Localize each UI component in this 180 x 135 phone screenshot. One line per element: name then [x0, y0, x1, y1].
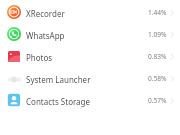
button[interactable]: WhatsApp: [0, 23, 180, 45]
staticText: 1.44%: [148, 8, 167, 17]
other: WhatsApp: [7, 27, 21, 41]
staticText: Contacts Storage: [26, 96, 91, 107]
button[interactable]: Contacts Storage: [0, 89, 180, 111]
staticText: System Launcher: [26, 74, 91, 85]
other: System Launcher: [7, 71, 21, 85]
staticText: WhatsApp: [26, 30, 65, 41]
other: Contacts Storage: [7, 93, 21, 107]
button[interactable]: XRecorder: [0, 1, 180, 23]
staticText: 0.57%: [148, 96, 167, 105]
other: Photos: [7, 49, 21, 63]
staticText: 1.09%: [148, 30, 167, 39]
other: XRecorder: [7, 5, 21, 19]
staticText: Photos: [26, 52, 53, 63]
staticText: 0.58%: [148, 74, 167, 83]
staticText: XRecorder: [26, 8, 65, 19]
button[interactable]: Photos: [0, 45, 180, 67]
button[interactable]: System Launcher: [0, 67, 180, 89]
staticText: 0.83%: [148, 52, 167, 61]
